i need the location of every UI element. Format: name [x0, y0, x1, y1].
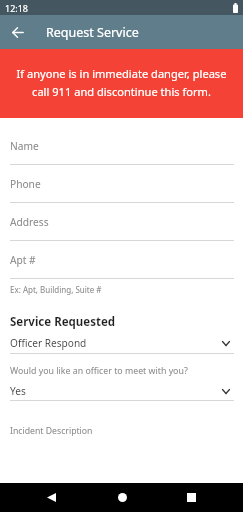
button[interactable]: Address: [10, 212, 234, 241]
staticText: Officer Respond: [10, 336, 87, 350]
staticText: Ex: Apt, Building, Suite #: [10, 284, 102, 295]
staticText: Incident Description: [10, 425, 93, 437]
staticText: Service Requested: [10, 314, 116, 330]
button[interactable]: Officer Respond: [10, 336, 234, 354]
button[interactable]: Home: [100, 483, 144, 512]
button[interactable]: Back: [6, 20, 30, 44]
staticText: If anyone is in immediate danger, please…: [15, 66, 228, 99]
button[interactable]: Recents: [169, 483, 213, 512]
button[interactable]: Yes: [10, 384, 234, 401]
staticText: Phone: [10, 177, 41, 191]
staticText: Would you like an officer to meet with y…: [10, 365, 188, 377]
button[interactable]: Name: [10, 136, 234, 165]
staticText: 12:18: [5, 2, 29, 14]
button[interactable]: Apt #: [10, 250, 234, 279]
staticText: Address: [10, 215, 49, 229]
button[interactable]: Phone: [10, 174, 234, 203]
staticText: Apt #: [10, 253, 36, 267]
staticText: Name: [10, 139, 39, 153]
staticText: Request Service: [46, 24, 139, 41]
staticText: Yes: [10, 384, 26, 398]
button[interactable]: Back: [29, 483, 73, 512]
